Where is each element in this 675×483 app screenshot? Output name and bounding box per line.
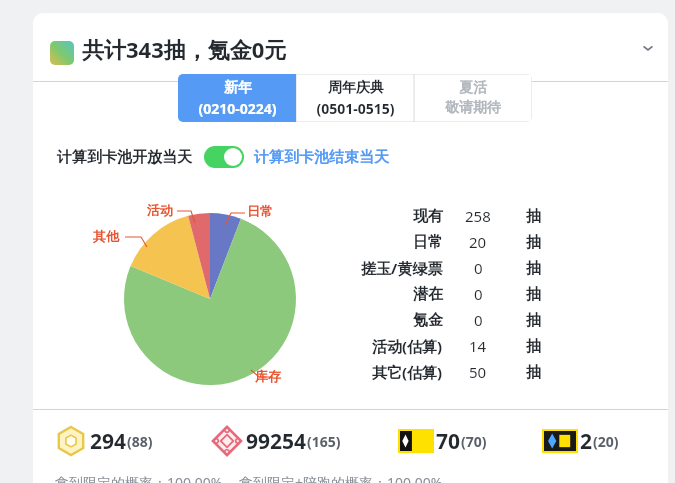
staticText: 20 [469, 232, 487, 252]
staticText: 夏活 [459, 79, 487, 97]
button[interactable]: 周年庆典 [296, 74, 414, 122]
staticText: 拿到限定的概率：100.00% [55, 473, 223, 483]
button[interactable]: 新年 [178, 74, 296, 122]
staticText: 现有 [413, 207, 443, 226]
staticText: 新年 [224, 79, 252, 97]
staticText: 抽 [526, 207, 541, 226]
staticText: 14 [469, 336, 487, 356]
other: Ticket [399, 430, 433, 452]
staticText: 294 [90, 427, 127, 456]
staticText: (165) [307, 432, 341, 451]
button[interactable]: Toggle [204, 146, 244, 168]
button[interactable]: Special ticket [543, 423, 619, 459]
staticText: 日常 [413, 233, 443, 252]
staticText: 70 [436, 427, 461, 456]
other: Diamond resource [211, 425, 243, 457]
staticText: 周年庆典 [328, 79, 384, 97]
staticText: 258 [465, 206, 491, 226]
staticText: 99254 [246, 427, 307, 456]
other: Hexagon resource [55, 425, 87, 457]
staticText: (70) [461, 432, 487, 451]
other: Special ticket [543, 430, 577, 452]
button[interactable]: Ticket [399, 423, 487, 459]
staticText: 活动(估算) [372, 336, 443, 356]
staticText: 氪金 [413, 311, 443, 330]
staticText: 抽 [526, 233, 541, 252]
staticText: 潜在 [413, 285, 443, 304]
staticText: 0 [474, 310, 483, 330]
staticText: (88) [127, 432, 153, 451]
staticText: 0 [474, 284, 483, 304]
staticText: 活动 [147, 202, 173, 218]
staticText: 0 [474, 258, 483, 278]
staticText: (0210-0224) [198, 99, 277, 118]
button[interactable]: 共计343抽，氪金0元 [33, 13, 668, 81]
staticText: 日常 [247, 203, 273, 219]
staticText: 其他 [93, 228, 119, 244]
staticText: 搓玉/黄绿票 [361, 258, 443, 278]
button[interactable]: 夏活 [414, 74, 532, 122]
staticText: 抽 [526, 285, 541, 304]
button[interactable]: Hexagon resource [55, 423, 153, 459]
staticText: 50 [469, 362, 487, 382]
staticText: 计算到卡池开放当天 [57, 148, 192, 167]
button[interactable]: 计算到卡池结束当天 [254, 148, 389, 167]
staticText: (20) [593, 432, 619, 451]
staticText: 抽 [526, 363, 541, 382]
button[interactable]: Diamond resource [211, 423, 341, 459]
staticText: 2 [580, 427, 593, 456]
staticText: 抽 [526, 259, 541, 278]
staticText: 拿到限定+陪跑的概率：100.00% [239, 473, 443, 483]
staticText: 敬请期待 [445, 99, 501, 117]
staticText: 抽 [526, 311, 541, 330]
staticText: 共计343抽，氪金0元 [82, 34, 287, 64]
other: Collapse [640, 40, 656, 56]
staticText: 其它(估算) [372, 362, 443, 382]
staticText: (0501-0515) [316, 99, 395, 118]
staticText: 库存 [255, 368, 281, 384]
staticText: 抽 [526, 337, 541, 356]
